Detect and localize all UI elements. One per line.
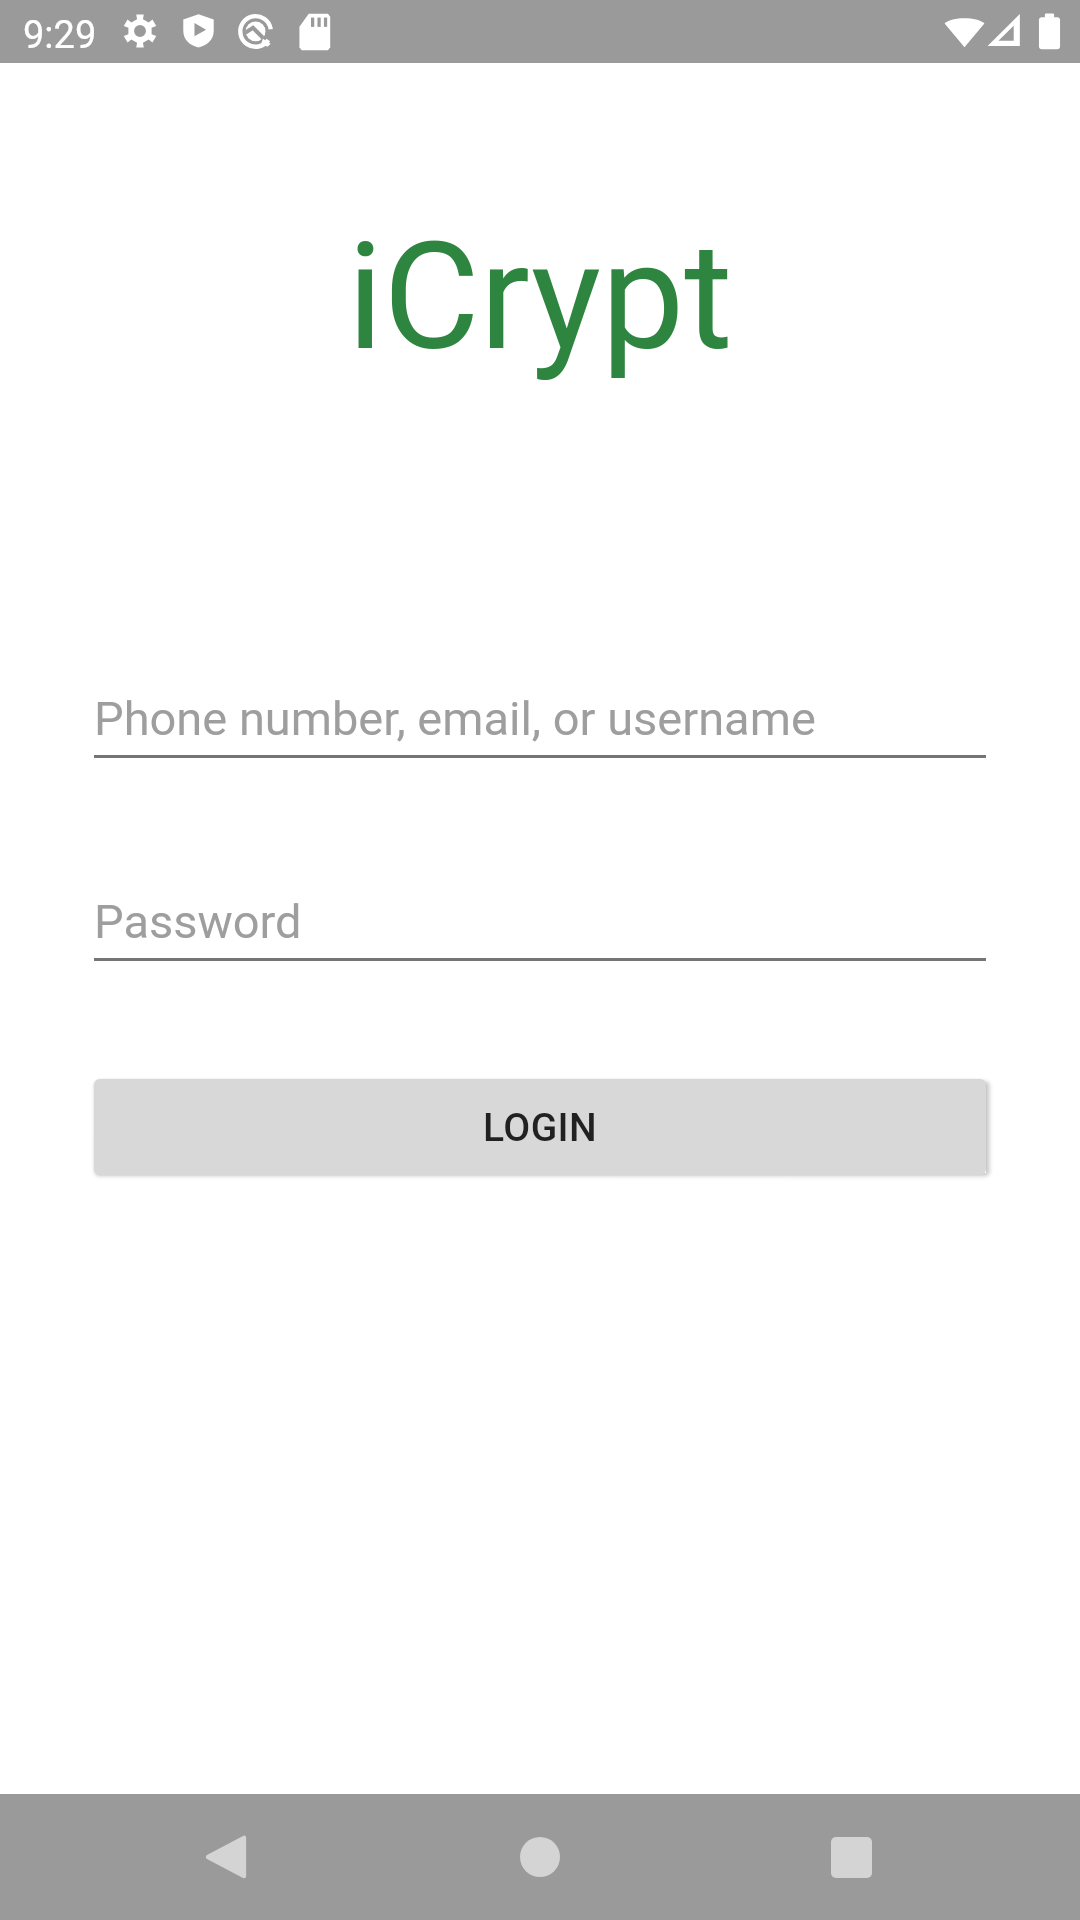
button[interactable]: Home (482, 1799, 598, 1915)
staticText: Password (94, 894, 302, 949)
button[interactable]: LOGIN (94, 1079, 986, 1175)
staticText: iCrypt (0, 211, 1080, 384)
staticText: 9:29 (23, 13, 97, 58)
staticText: Phone number, email, or username (94, 691, 816, 746)
button[interactable]: Back (168, 1799, 284, 1915)
staticText: LOGIN (483, 1105, 598, 1151)
button[interactable]: Phone number, email, or username (94, 691, 986, 758)
button[interactable]: Recents (793, 1799, 909, 1915)
button[interactable]: Password (94, 894, 986, 961)
